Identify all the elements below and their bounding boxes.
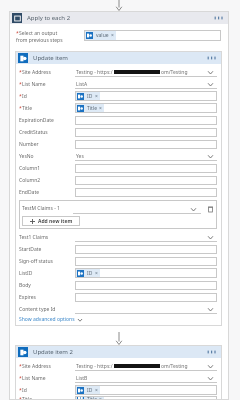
staticText: TestM Claims - 1 — [22, 205, 70, 212]
staticText: × — [95, 270, 98, 277]
staticText: Site Address — [22, 69, 51, 76]
staticText: * — [16, 30, 19, 37]
staticText: Show advanced options — [19, 316, 75, 323]
staticText: × — [111, 32, 114, 39]
button[interactable]: Expires — [19, 291, 217, 303]
staticText: ID — [87, 387, 93, 394]
staticText: ListID — [19, 270, 33, 277]
button[interactable]: ID — [76, 269, 100, 278]
staticText: Column1 — [19, 165, 41, 172]
button[interactable]: * — [19, 396, 217, 400]
staticText: Title — [22, 105, 32, 112]
staticText: om/Testing — [161, 363, 188, 370]
button[interactable]: Apply to each 2 — [9, 11, 229, 24]
staticText: Site Address — [22, 363, 51, 370]
button[interactable]: * — [19, 78, 217, 90]
staticText: * — [19, 396, 22, 400]
staticText: * — [19, 375, 22, 382]
staticText: × — [99, 396, 102, 400]
staticText: ID — [87, 93, 93, 100]
button[interactable]: Update item — [15, 51, 222, 64]
staticText: ListB — [76, 375, 88, 382]
staticText: Title — [87, 396, 97, 400]
staticText: Sign-off status — [19, 258, 53, 265]
staticText: × — [95, 93, 98, 100]
staticText: Id — [22, 387, 27, 394]
staticText: ID — [87, 270, 93, 277]
staticText: CreditStatus — [19, 129, 48, 136]
button[interactable]: More commands — [206, 53, 218, 63]
staticText: List Name — [22, 81, 46, 88]
button[interactable]: Column2 — [19, 174, 217, 186]
button[interactable]: * — [19, 66, 217, 78]
staticText: Yes — [76, 153, 84, 160]
staticText: Add new item — [38, 218, 73, 225]
staticText: Testing - https:/ — [76, 69, 113, 76]
staticText: * — [19, 69, 22, 76]
staticText: * — [19, 363, 22, 370]
button[interactable]: * — [19, 102, 217, 114]
staticText: * — [19, 93, 22, 100]
button[interactable]: ID — [76, 92, 100, 101]
button[interactable]: Body — [19, 279, 217, 291]
button[interactable]: EndDate — [19, 186, 217, 198]
staticText: Body — [19, 282, 31, 289]
staticText: Update item 2 — [33, 348, 73, 356]
staticText: YesNo — [19, 153, 34, 160]
button[interactable]: ID — [76, 386, 100, 395]
button[interactable]: Number — [19, 138, 217, 150]
button[interactable]: Show advanced options — [19, 316, 83, 323]
staticText: StartDate — [19, 246, 42, 253]
staticText: Apply to each 2 — [27, 14, 71, 22]
staticText: ListA — [76, 81, 88, 88]
staticText: EndDate — [19, 189, 40, 196]
staticText: Title — [22, 396, 32, 400]
button[interactable]: YesNo — [19, 150, 217, 162]
staticText: Update item — [33, 54, 68, 62]
staticText: value — [96, 32, 109, 39]
staticText: × — [95, 387, 98, 394]
staticText: * — [19, 81, 22, 88]
staticText: Expires — [19, 294, 36, 301]
staticText: Select an output — [19, 30, 58, 37]
staticText: Column2 — [19, 177, 41, 184]
staticText: Test1 Claims — [19, 234, 49, 241]
button[interactable]: CreditStatus — [19, 126, 217, 138]
button[interactable]: Column1 — [19, 162, 217, 174]
staticText: * — [19, 387, 22, 394]
staticText: Title — [87, 105, 97, 112]
button[interactable]: More commands — [206, 347, 218, 357]
button[interactable]: Add new item — [22, 216, 80, 226]
button[interactable]: value — [84, 30, 221, 41]
button[interactable]: Test1 Claims — [19, 231, 217, 243]
button[interactable]: Sign-off status — [19, 255, 217, 267]
button[interactable]: Delete item — [206, 205, 214, 213]
staticText: Testing - https:/ — [76, 363, 113, 370]
staticText: Id — [22, 93, 27, 100]
button[interactable]: ExpirationDate — [19, 114, 217, 126]
button[interactable]: More commands — [213, 13, 225, 23]
staticText: × — [99, 105, 102, 112]
button[interactable]: StartDate — [19, 243, 217, 255]
button[interactable]: Content type Id — [19, 303, 217, 315]
button[interactable]: * — [19, 360, 217, 372]
staticText: Content type Id — [19, 306, 56, 313]
staticText: Number — [19, 141, 39, 148]
button[interactable]: ListID — [19, 267, 217, 279]
button[interactable]: Title — [76, 396, 104, 400]
staticText: ExpirationDate — [19, 117, 54, 124]
staticText: from previous steps — [16, 37, 63, 44]
button[interactable]: * — [19, 372, 217, 384]
button[interactable]: Title — [76, 104, 104, 113]
staticText: * — [19, 105, 22, 112]
button[interactable]: value — [85, 31, 116, 40]
staticText: List Name — [22, 375, 46, 382]
button[interactable]: Update item 2 — [15, 345, 222, 358]
button[interactable]: TestM Claims - 1 — [22, 203, 214, 214]
staticText: om/Testing — [161, 69, 188, 76]
button[interactable]: * — [19, 90, 217, 102]
button[interactable]: * — [19, 384, 217, 396]
